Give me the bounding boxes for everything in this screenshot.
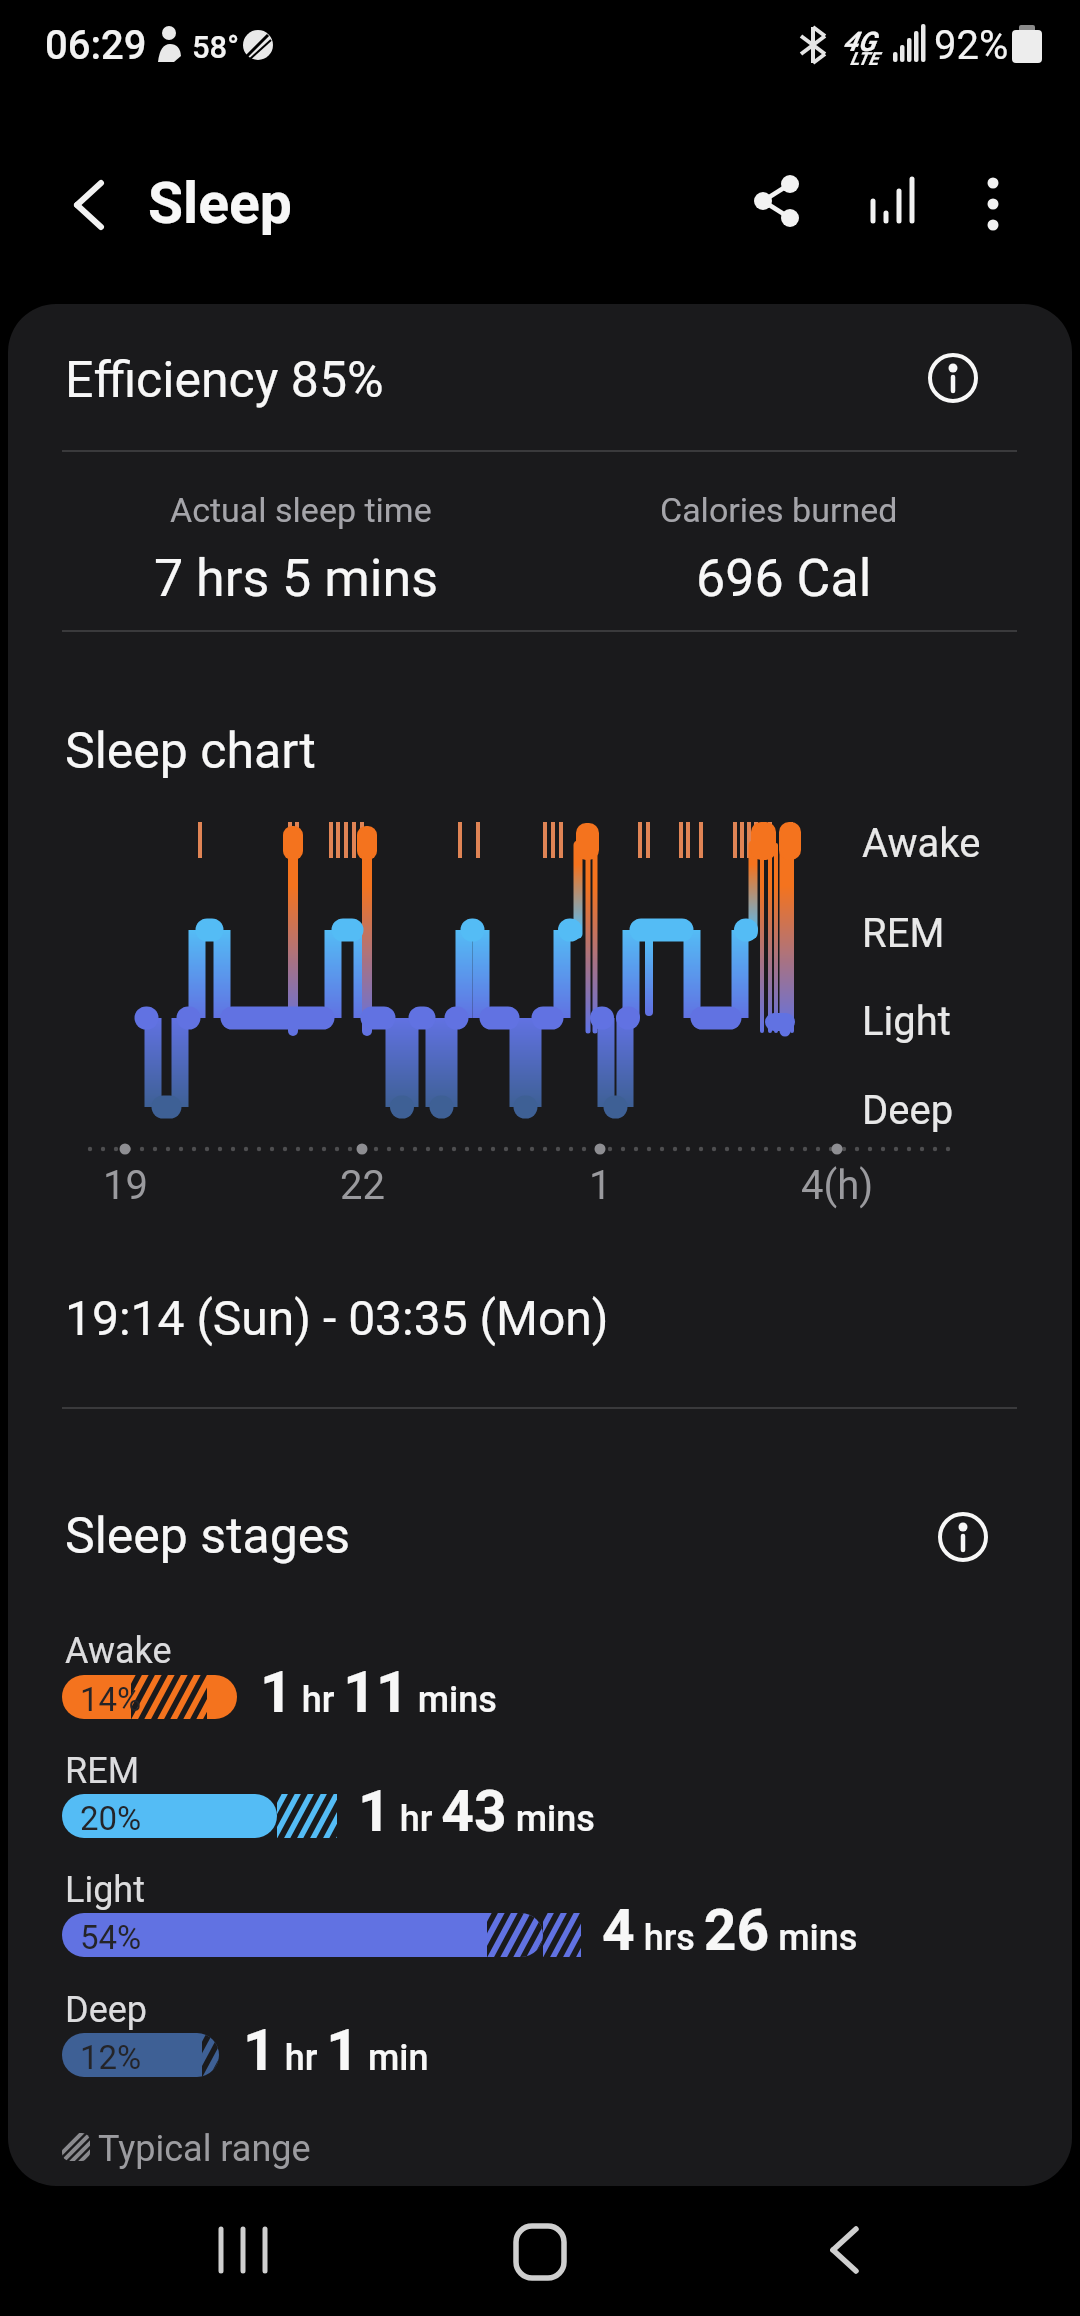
button[interactable] bbox=[932, 1506, 994, 1568]
staticText: 4 hrs 26 mins bbox=[602, 1897, 858, 1964]
staticText: Typical range bbox=[98, 2128, 311, 2170]
staticText: Sleep stages bbox=[65, 1507, 351, 1566]
staticText: 4(h) bbox=[801, 1162, 874, 1209]
staticText: 1 hr 1 min bbox=[243, 2017, 429, 2084]
button[interactable] bbox=[922, 347, 984, 409]
staticText: 06:29 bbox=[45, 22, 147, 69]
staticText: 58° bbox=[192, 29, 240, 65]
staticText: 20% bbox=[80, 1799, 142, 1838]
staticText: Awake bbox=[65, 1630, 172, 1672]
staticText: 696 Cal bbox=[696, 548, 872, 609]
staticText: Actual sleep time bbox=[170, 490, 432, 530]
staticText: 1 hr 43 mins bbox=[358, 1778, 595, 1845]
staticText: 22 bbox=[340, 1162, 385, 1209]
staticText: 1 hr 11 mins bbox=[260, 1659, 497, 1726]
staticText: Calories burned bbox=[660, 490, 898, 530]
staticText: Sleep bbox=[148, 170, 292, 237]
staticText: LTE bbox=[850, 48, 879, 69]
staticText: Efficiency 85% bbox=[65, 351, 384, 410]
button[interactable] bbox=[962, 172, 1024, 234]
staticText: 1 bbox=[589, 1162, 612, 1209]
staticText: 19 bbox=[103, 1162, 148, 1209]
staticText: 19:14 (Sun) - 03:35 (Mon) bbox=[65, 1290, 609, 1346]
staticText: Light bbox=[65, 1869, 145, 1911]
button[interactable] bbox=[860, 172, 924, 236]
button[interactable] bbox=[795, 2220, 895, 2282]
staticText: Deep bbox=[862, 1087, 954, 1134]
staticText: Deep bbox=[65, 1989, 148, 2031]
staticText: 92% bbox=[934, 22, 1009, 69]
button[interactable] bbox=[193, 2220, 293, 2282]
staticText: Awake bbox=[862, 820, 981, 867]
button[interactable] bbox=[746, 172, 810, 236]
button[interactable] bbox=[56, 175, 116, 235]
staticText: 12% bbox=[80, 2038, 142, 2077]
staticText: 4G bbox=[843, 26, 876, 58]
staticText: Sleep chart bbox=[65, 722, 316, 781]
staticText: 54% bbox=[80, 1918, 142, 1957]
staticText: 7 hrs 5 mins bbox=[154, 548, 439, 609]
button[interactable] bbox=[490, 2220, 590, 2282]
staticText: REM bbox=[65, 1750, 140, 1792]
staticText: 14% bbox=[80, 1680, 142, 1719]
staticText: REM bbox=[862, 910, 945, 957]
staticText: Light bbox=[862, 998, 951, 1045]
